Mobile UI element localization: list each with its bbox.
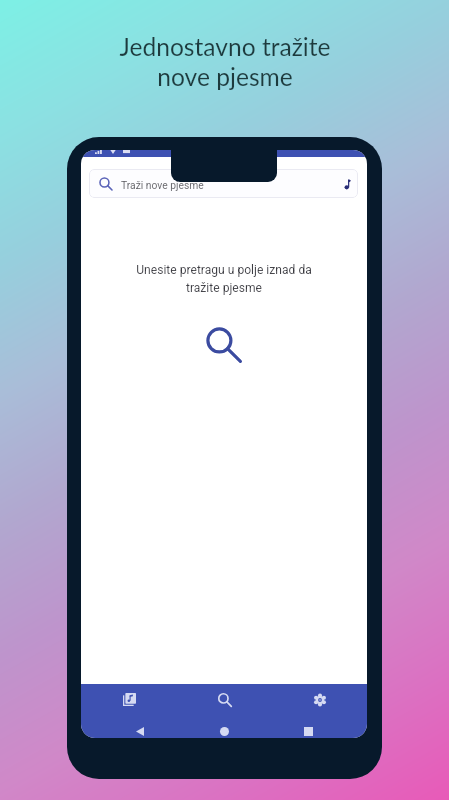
staticText: Unesite pretragu u polje iznad da tražit… <box>124 263 324 295</box>
button[interactable]: Settings <box>272 684 367 715</box>
button[interactable]: Home <box>217 724 231 738</box>
button[interactable]: Search <box>177 684 272 715</box>
staticText: Jednostavno tražite <box>119 32 331 62</box>
button[interactable]: Traži nove pjesme <box>89 169 358 198</box>
staticText: Traži nove pjesme <box>121 179 204 191</box>
button[interactable]: Back <box>133 724 147 738</box>
button[interactable]: Library <box>81 684 177 715</box>
staticText: nove pjesme <box>157 62 293 92</box>
button[interactable]: Recents <box>301 724 315 738</box>
